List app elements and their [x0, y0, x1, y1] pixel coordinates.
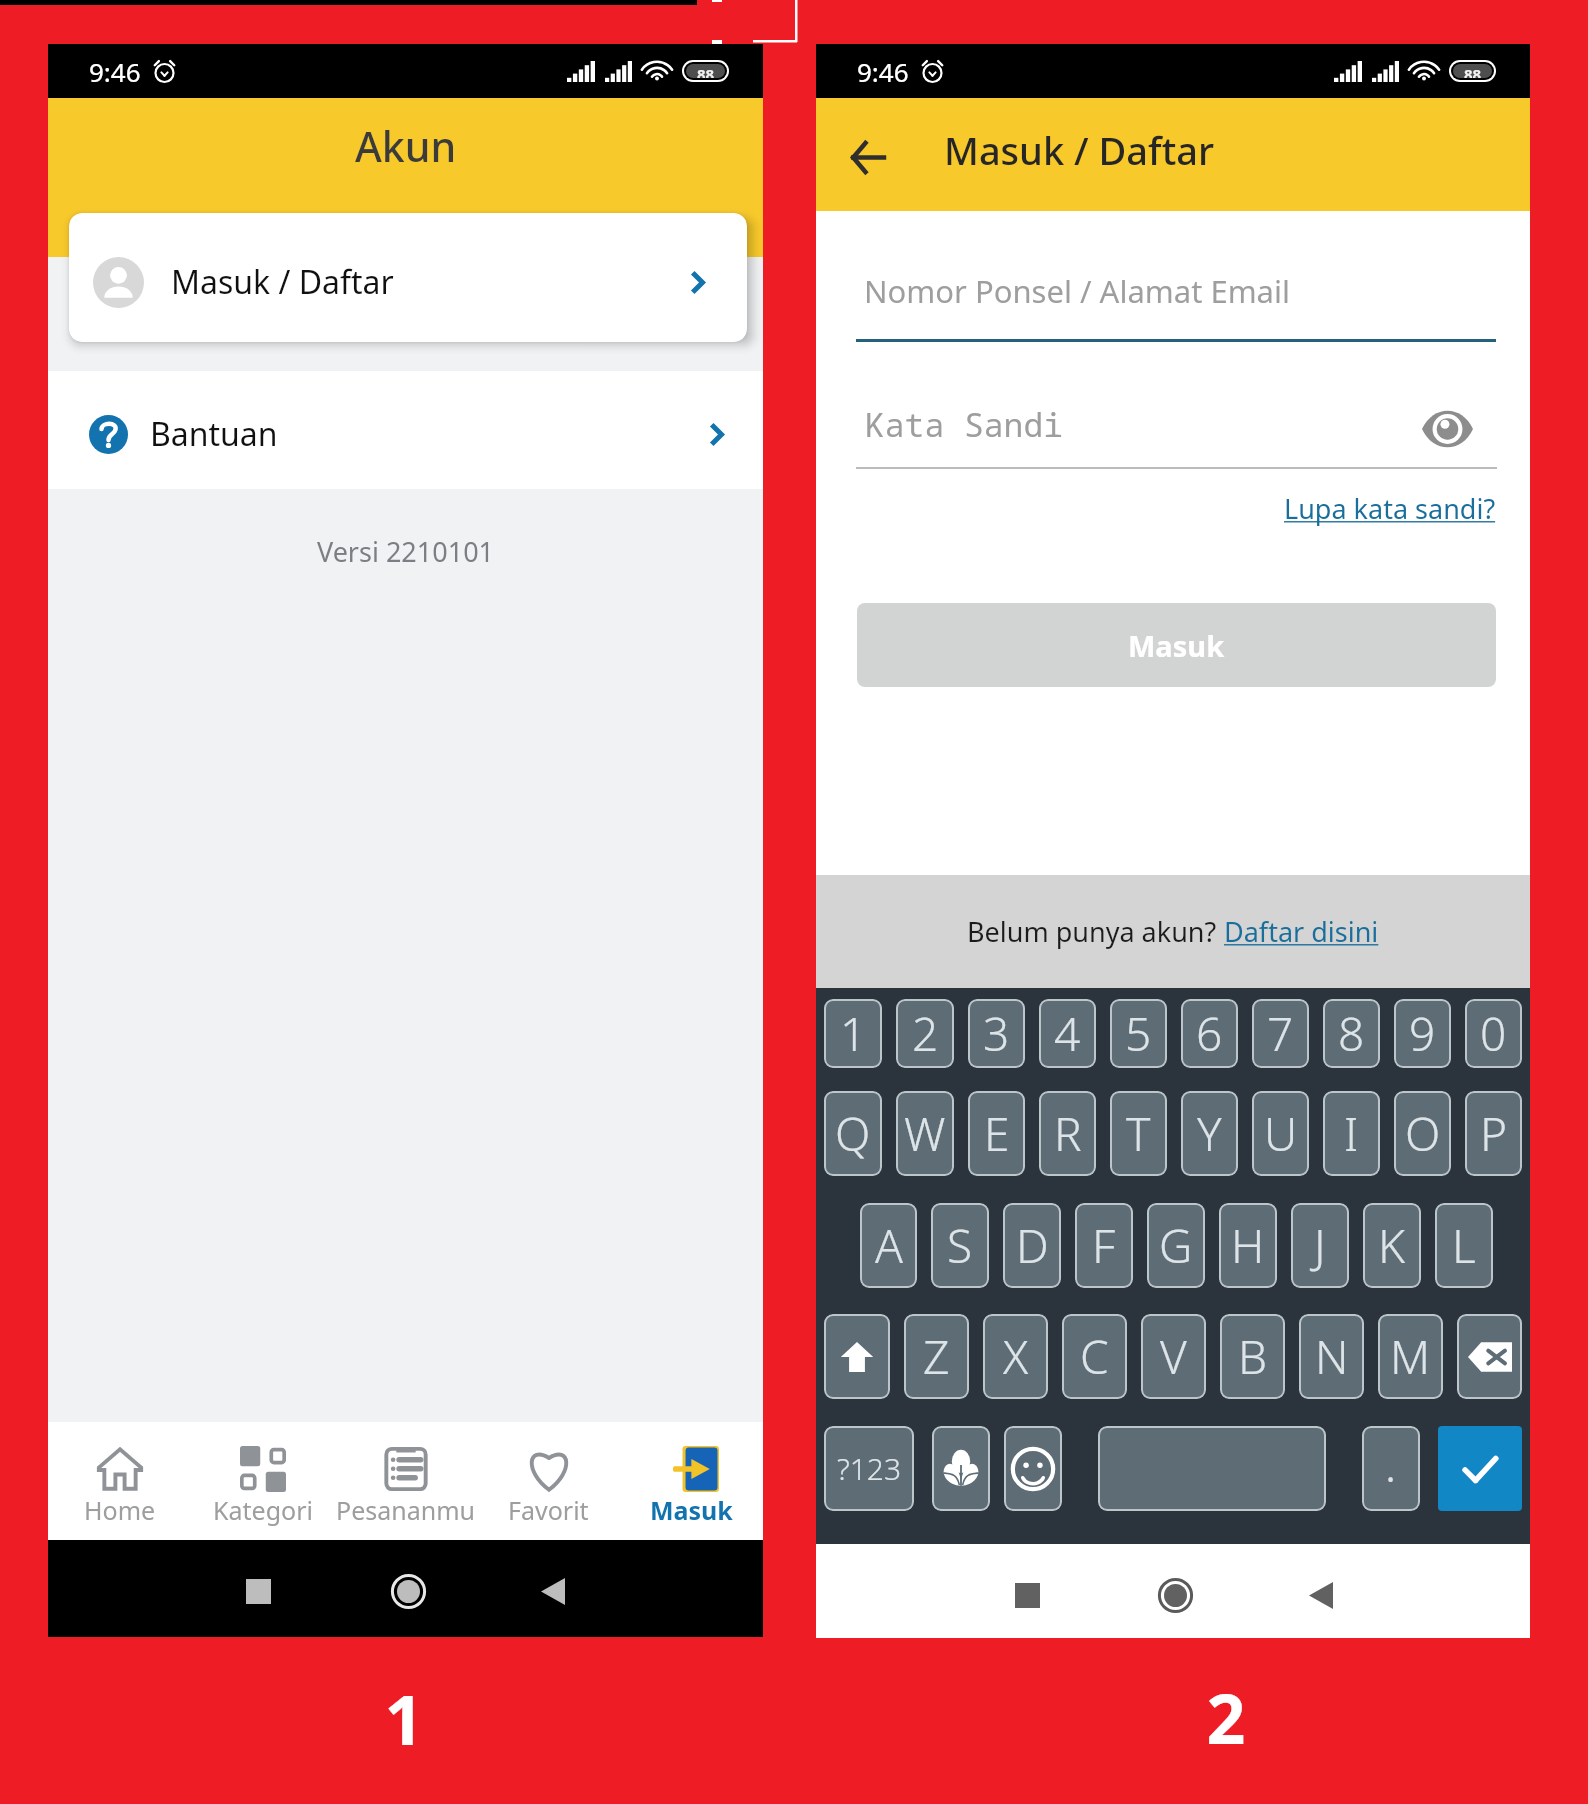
- button[interactable]: Daftar disini: [1224, 913, 1379, 950]
- button[interactable]: Backspace: [1457, 1314, 1522, 1399]
- staticText: 9: [1409, 1002, 1436, 1065]
- button[interactable]: 6: [1181, 999, 1238, 1068]
- button[interactable]: .: [1362, 1426, 1420, 1511]
- button[interactable]: Y: [1181, 1091, 1238, 1176]
- button[interactable]: 3: [968, 999, 1025, 1068]
- button[interactable]: T: [1110, 1091, 1167, 1176]
- button[interactable]: Home: [1153, 1573, 1197, 1617]
- staticText: Home: [84, 1493, 156, 1527]
- button[interactable]: 4: [1039, 999, 1096, 1068]
- staticText: N: [1315, 1325, 1349, 1388]
- staticText: W: [904, 1102, 946, 1165]
- button[interactable]: Masuk / Daftar: [69, 213, 747, 342]
- button[interactable]: 9: [1394, 999, 1451, 1068]
- staticText: 4: [1054, 1002, 1081, 1065]
- staticText: O: [1405, 1102, 1441, 1165]
- button[interactable]: D: [1003, 1203, 1061, 1288]
- staticText: Favorit: [508, 1493, 589, 1527]
- button[interactable]: O: [1394, 1091, 1451, 1176]
- staticText: 9:46: [857, 54, 909, 89]
- staticText: Masuk / Daftar: [171, 260, 394, 304]
- button[interactable]: R: [1039, 1091, 1096, 1176]
- button[interactable]: 5: [1110, 999, 1167, 1068]
- button[interactable]: F: [1075, 1203, 1133, 1288]
- button[interactable]: B: [1220, 1314, 1285, 1399]
- staticText: 1: [364, 1672, 444, 1765]
- button[interactable]: H: [1219, 1203, 1277, 1288]
- button[interactable]: Show password: [1417, 401, 1477, 457]
- button[interactable]: A: [860, 1203, 917, 1288]
- button[interactable]: Back: [535, 1573, 571, 1609]
- button[interactable]: ?123: [824, 1426, 914, 1511]
- staticText: 9:46: [89, 54, 141, 89]
- button[interactable]: Recent apps: [240, 1573, 276, 1609]
- button[interactable]: 8: [1323, 999, 1380, 1068]
- button[interactable]: Bantuan: [48, 371, 763, 489]
- button[interactable]: M: [1378, 1314, 1443, 1399]
- button[interactable]: E: [968, 1091, 1025, 1176]
- button[interactable]: G: [1147, 1203, 1205, 1288]
- button[interactable]: L: [1435, 1203, 1493, 1288]
- button[interactable]: 2: [896, 999, 954, 1068]
- staticText: Kata Sandi: [865, 402, 1064, 447]
- staticText: H: [1231, 1214, 1265, 1277]
- button[interactable]: Masuk: [620, 1422, 763, 1540]
- staticText: 3: [983, 1002, 1010, 1065]
- button[interactable]: Q: [824, 1091, 882, 1176]
- button[interactable]: Back: [832, 123, 902, 191]
- button[interactable]: Enter: [1438, 1426, 1522, 1511]
- staticText: Z: [923, 1325, 950, 1388]
- staticText: S: [947, 1214, 973, 1277]
- staticText: F: [1092, 1214, 1116, 1277]
- button[interactable]: Lupa kata sandi?: [1241, 484, 1496, 532]
- staticText: D: [1016, 1214, 1049, 1277]
- button[interactable]: Home: [386, 1569, 430, 1613]
- button[interactable]: Shift: [824, 1314, 890, 1399]
- staticText: V: [1160, 1325, 1187, 1388]
- button[interactable]: Favorit: [477, 1422, 620, 1540]
- button[interactable]: N: [1299, 1314, 1364, 1399]
- staticText: C: [1080, 1325, 1109, 1388]
- staticText: Masuk: [1128, 626, 1225, 665]
- button[interactable]: Language: [932, 1426, 990, 1511]
- button[interactable]: W: [896, 1091, 954, 1176]
- button[interactable]: I: [1323, 1091, 1380, 1176]
- staticText: Pesananmu: [336, 1493, 475, 1527]
- staticText: 2: [912, 1002, 939, 1065]
- button[interactable]: J: [1291, 1203, 1349, 1288]
- button[interactable]: Z: [904, 1314, 969, 1399]
- button[interactable]: C: [1062, 1314, 1127, 1399]
- button[interactable]: 0: [1465, 999, 1522, 1068]
- button[interactable]: S: [931, 1203, 989, 1288]
- button[interactable]: Space: [1098, 1426, 1326, 1511]
- button[interactable]: U: [1252, 1091, 1309, 1176]
- staticText: X: [1003, 1325, 1029, 1388]
- staticText: A: [875, 1214, 903, 1277]
- staticText: E: [984, 1102, 1010, 1165]
- staticText: G: [1159, 1214, 1193, 1277]
- button[interactable]: Home: [48, 1422, 191, 1540]
- staticText: T: [1126, 1102, 1151, 1165]
- button[interactable]: Masuk: [857, 603, 1496, 687]
- button[interactable]: 1: [824, 999, 882, 1068]
- button[interactable]: Back: [1303, 1577, 1339, 1613]
- staticText: Kategori: [213, 1493, 313, 1527]
- staticText: Y: [1197, 1102, 1222, 1165]
- button[interactable]: X: [983, 1314, 1048, 1399]
- button[interactable]: K: [1363, 1203, 1421, 1288]
- staticText: Lupa kata sandi?: [1284, 490, 1496, 527]
- button[interactable]: Recent apps: [1009, 1577, 1045, 1613]
- staticText: R: [1054, 1102, 1082, 1165]
- button[interactable]: 7: [1252, 999, 1309, 1068]
- staticText: K: [1378, 1214, 1406, 1277]
- button[interactable]: Kategori: [191, 1422, 334, 1540]
- button[interactable]: V: [1141, 1314, 1206, 1399]
- button[interactable]: Pesananmu: [334, 1422, 477, 1540]
- staticText: Nomor Ponsel / Alamat Email: [864, 270, 1291, 312]
- staticText: U: [1264, 1102, 1298, 1165]
- button[interactable]: P: [1465, 1091, 1522, 1176]
- staticText: I: [1344, 1102, 1359, 1165]
- staticText: 7: [1267, 1002, 1294, 1065]
- staticText: Belum punya akun?: [967, 913, 1224, 950]
- button[interactable]: Emoji: [1004, 1426, 1062, 1511]
